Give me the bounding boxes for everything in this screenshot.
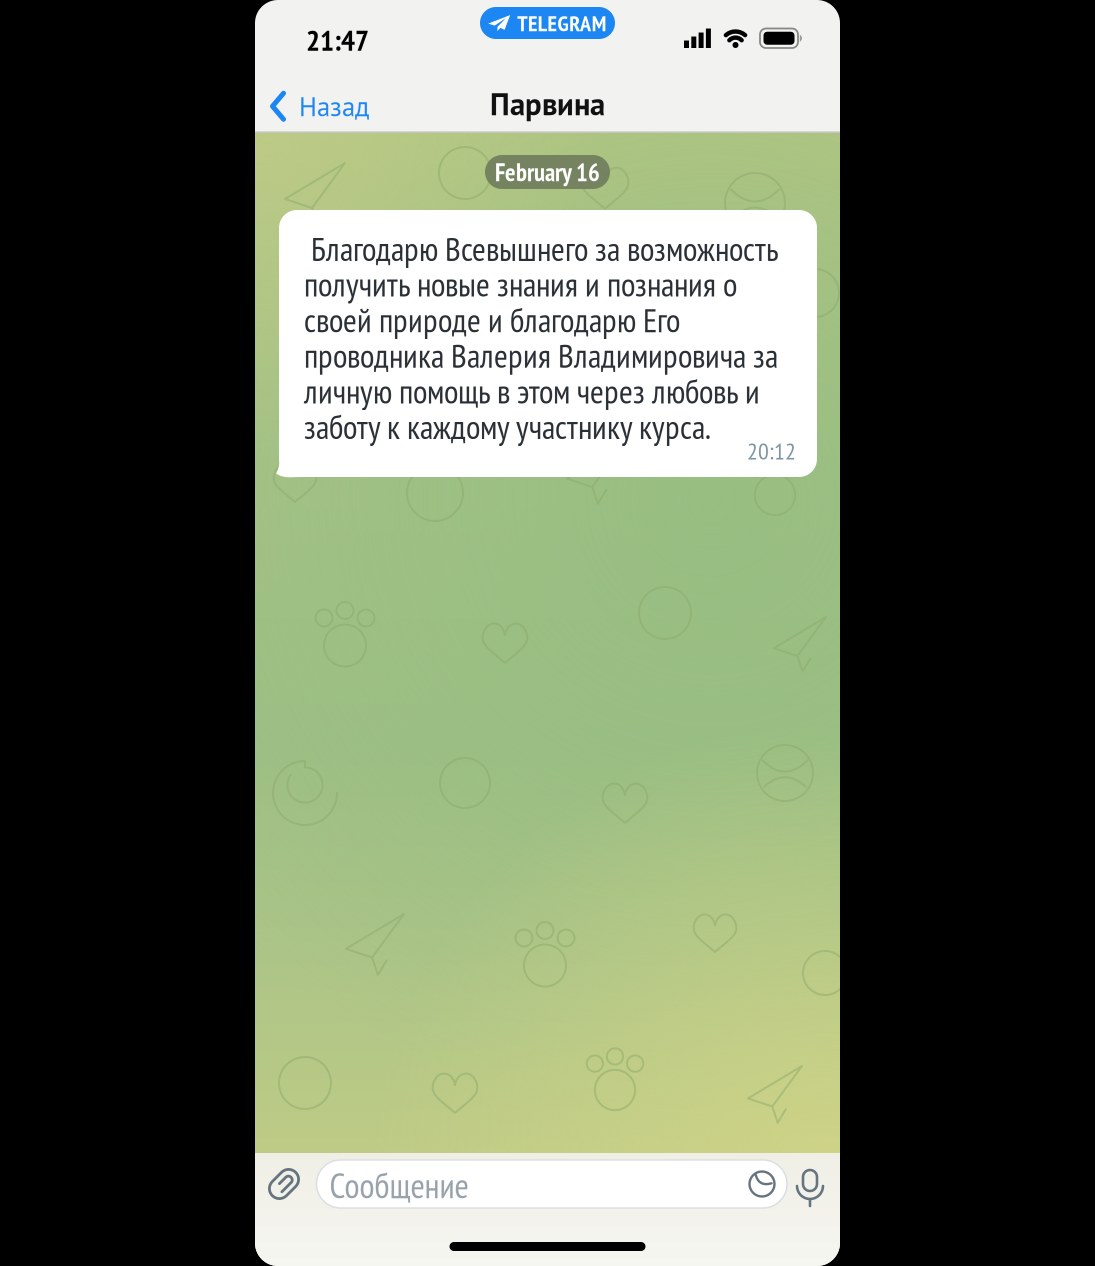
staticText: Назад [299,89,369,123]
staticText: February 16 [495,156,600,188]
button[interactable]: Scheduled messages [749,1171,774,1196]
button[interactable]: Back [270,89,369,123]
staticText: проводника Валерия Владимировича за [304,334,778,377]
staticText: Парвина [490,84,605,124]
button[interactable]: Chat info: Парвина [490,84,605,124]
button[interactable]: Record voice message [795,1170,825,1206]
staticText: получить новые знания и познания о [304,263,737,306]
button[interactable]: Attach [265,1165,303,1203]
button[interactable]: Message [316,1160,787,1208]
staticText: 20:12 [747,435,796,466]
staticText: заботу к каждому участнику курса. [304,405,711,448]
button[interactable]: Return to Telegram [480,7,615,39]
staticText: 21:47 [306,21,369,59]
staticText: личную помощь в этом через любовь и [304,369,760,413]
staticText: TELEGRAM [517,9,607,37]
staticText: Благодарю Всевышнего за возможность [304,227,779,270]
staticText: Сообщение [329,1163,468,1208]
staticText: своей природе и благодарю Его [304,298,680,341]
